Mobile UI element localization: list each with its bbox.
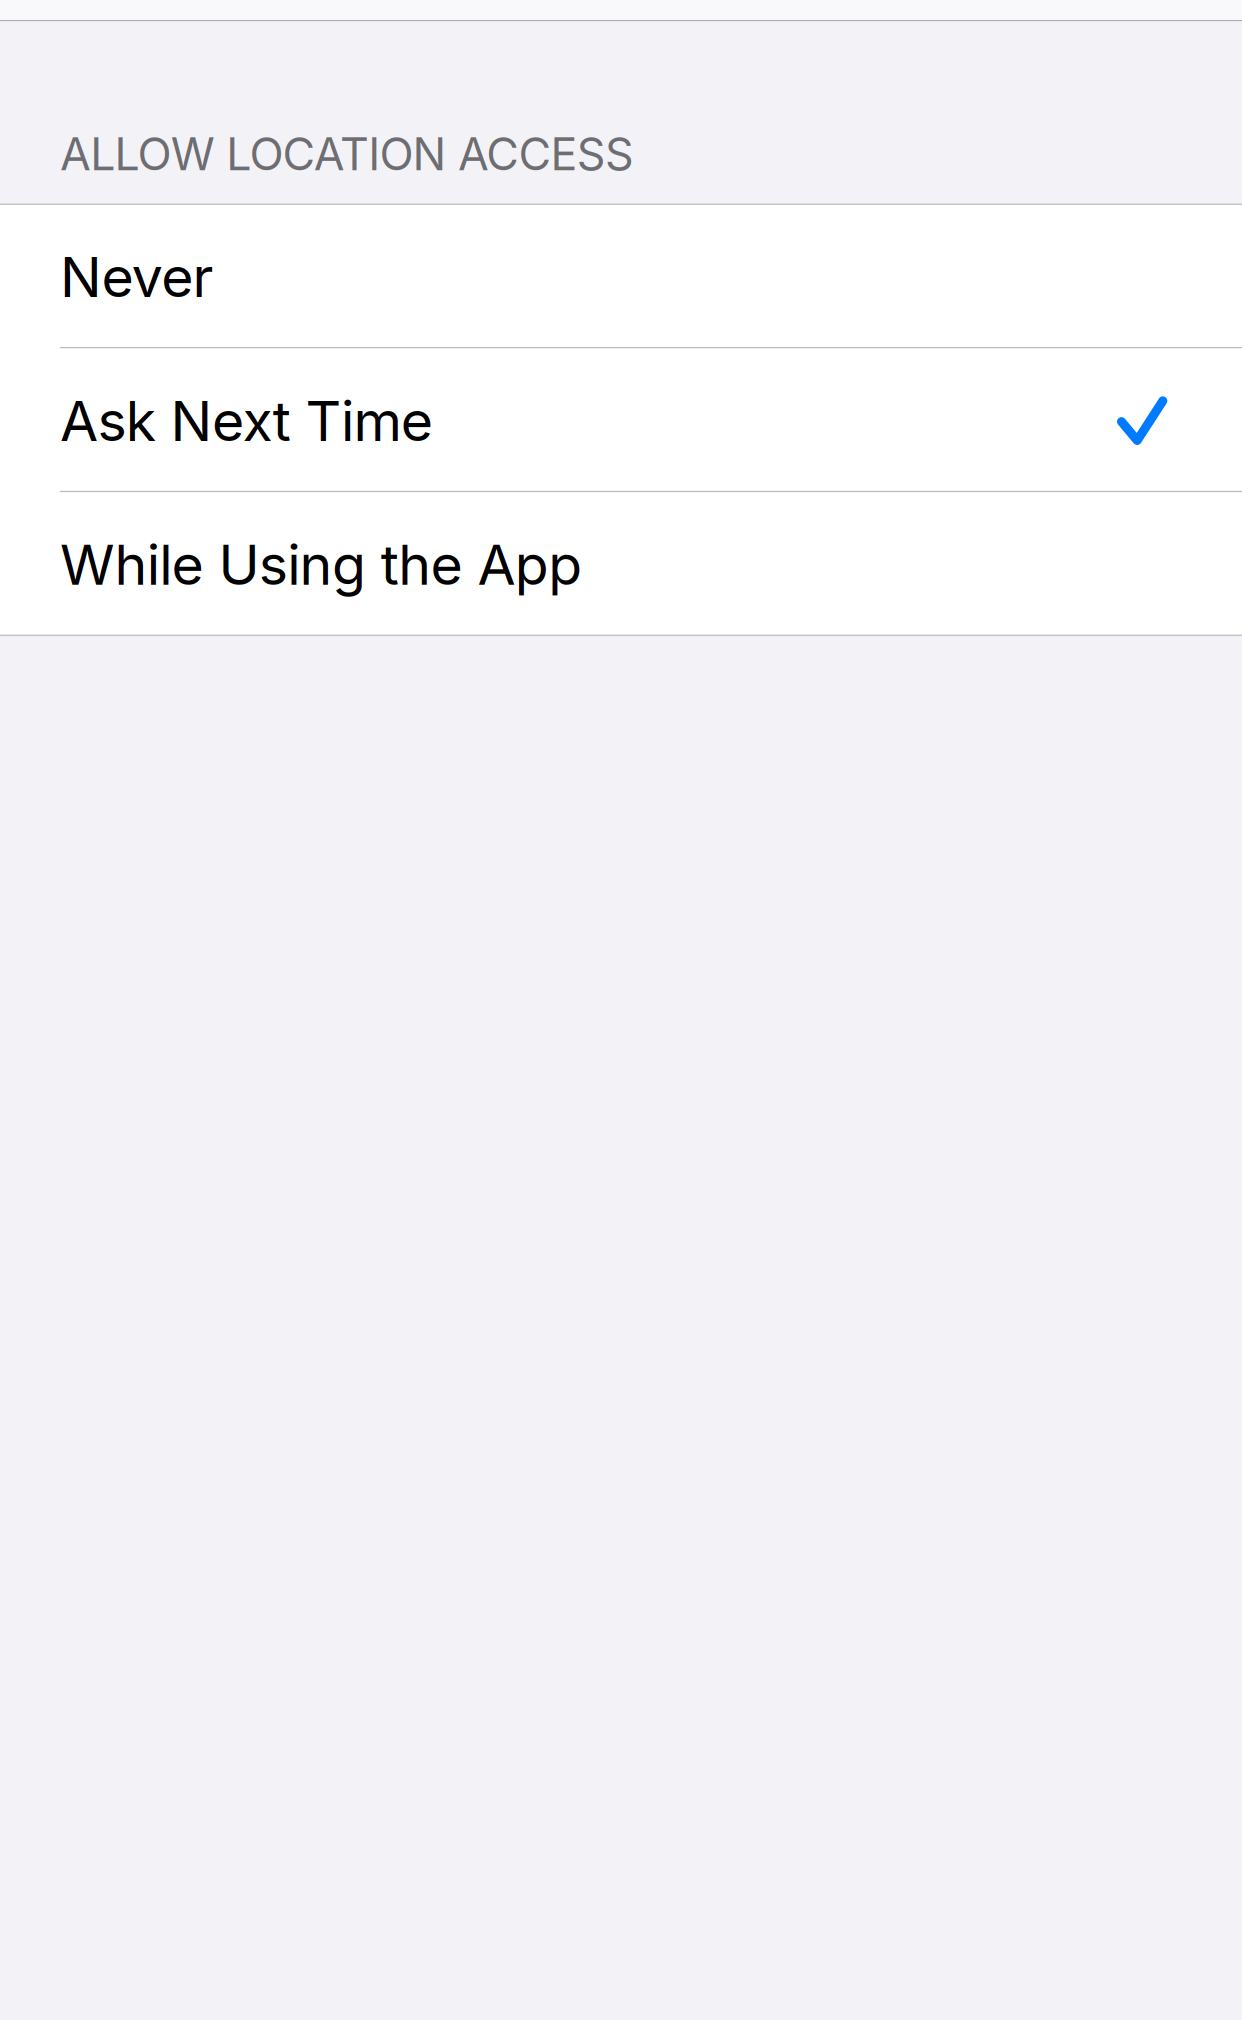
button[interactable]: Never bbox=[0, 205, 1242, 349]
staticText: ALLOW LOCATION ACCESS bbox=[60, 127, 634, 181]
button[interactable]: Ask Next Time bbox=[0, 349, 1242, 493]
staticText: Ask Next Time bbox=[60, 387, 433, 454]
button[interactable]: While Using the App bbox=[0, 493, 1242, 636]
staticText: While Using the App bbox=[60, 531, 582, 598]
staticText: Never bbox=[60, 243, 214, 310]
